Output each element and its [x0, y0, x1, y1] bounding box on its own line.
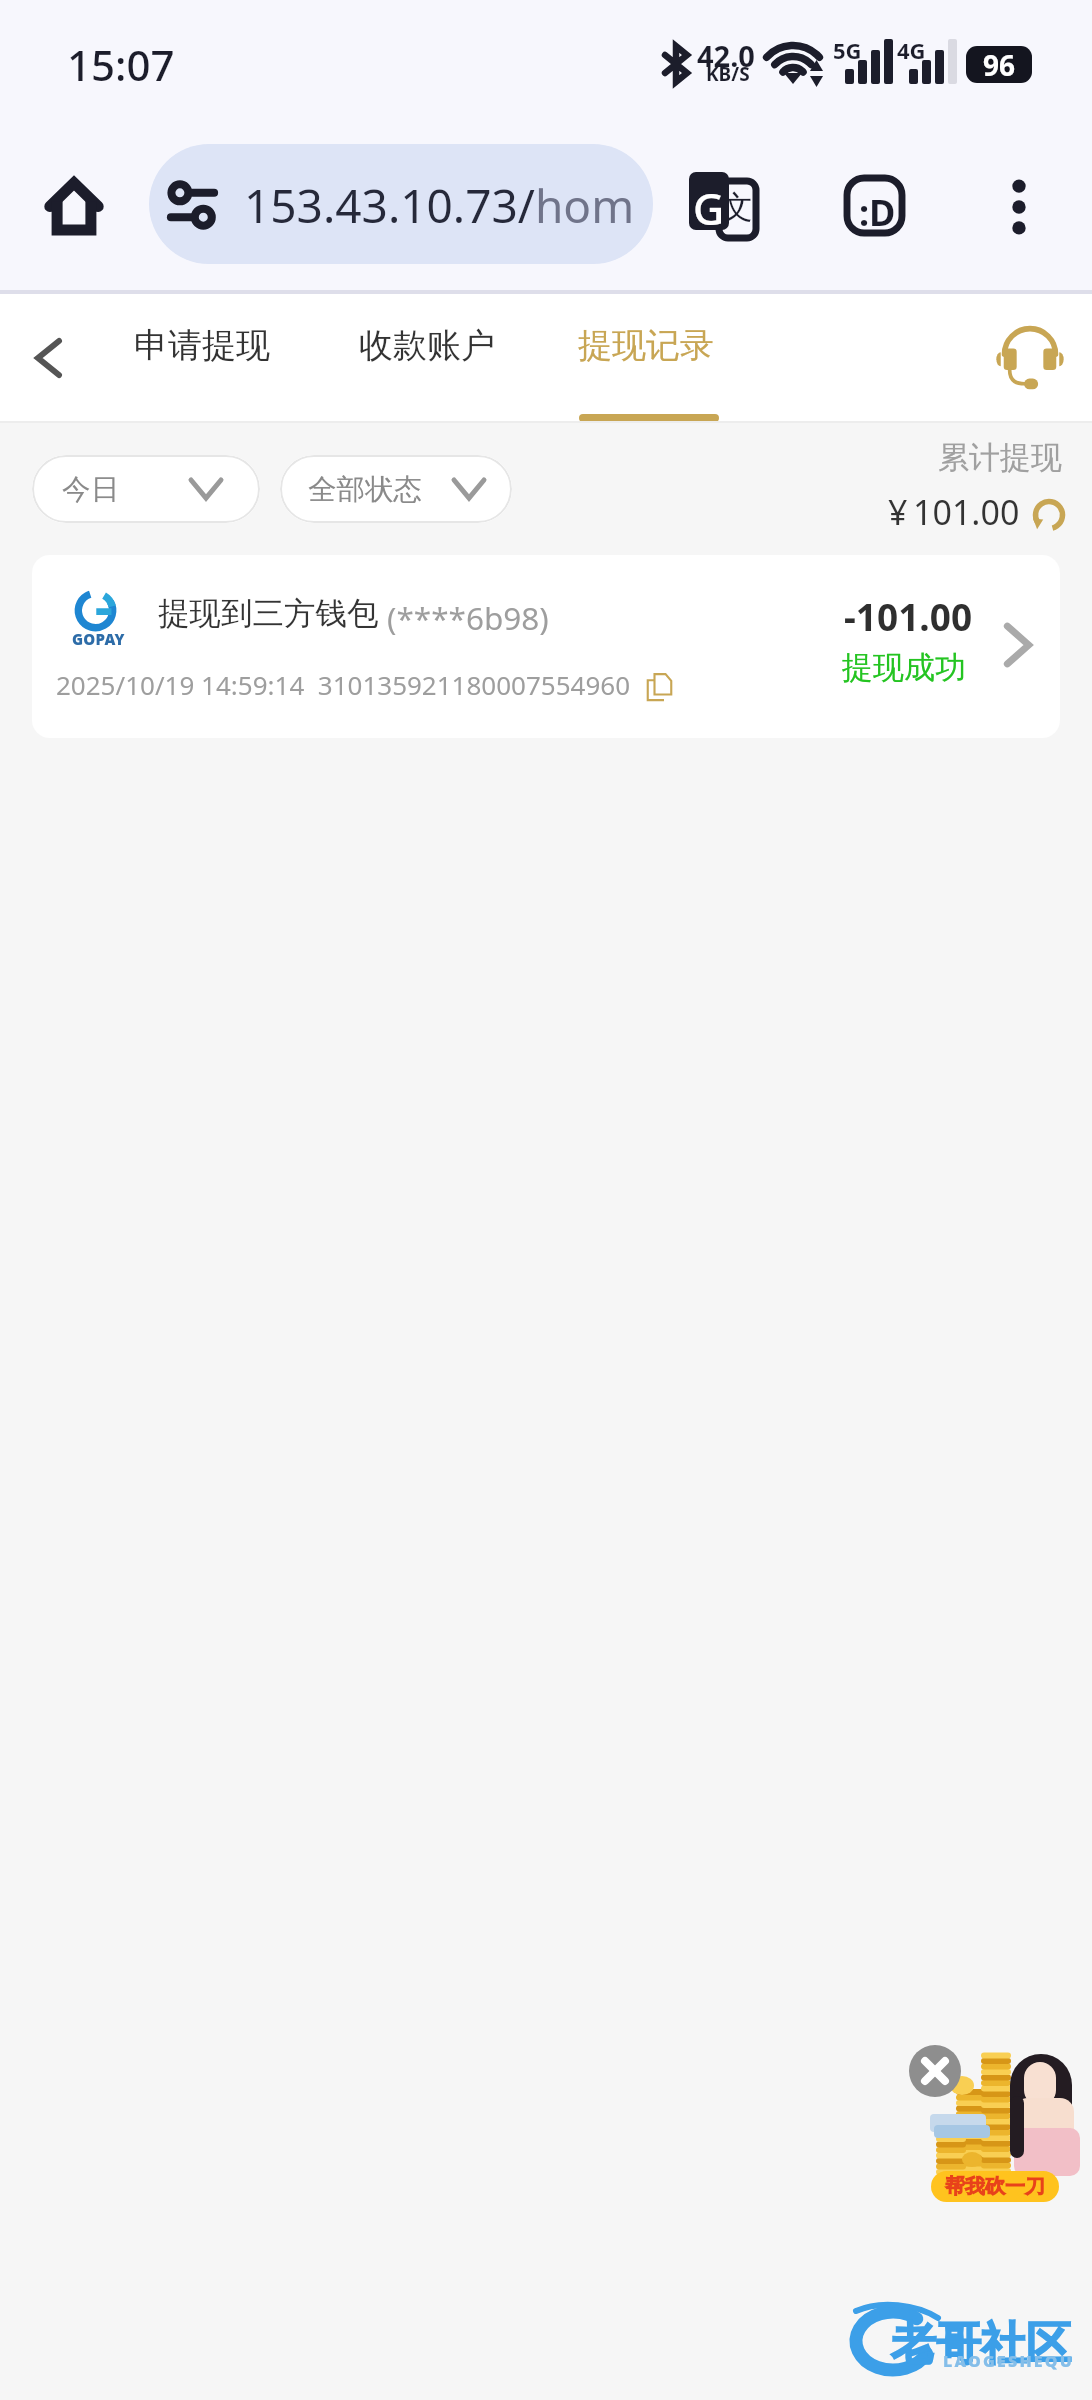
button[interactable]: 申请提现	[110, 300, 294, 400]
staticText: 老哥社区	[891, 2316, 1071, 2373]
staticText: 153.43.10.73/hom	[244, 174, 635, 237]
staticText: 提现成功	[842, 648, 966, 687]
button[interactable]: Refresh total	[1032, 498, 1066, 532]
button[interactable]: GOPAY	[32, 555, 1060, 738]
staticText: 5G	[833, 35, 862, 65]
staticText: LAOGESHEQU	[943, 2350, 1075, 2372]
staticText: 文	[721, 187, 753, 227]
button[interactable]: Switch tabs	[829, 155, 921, 247]
button[interactable]: 今日	[32, 455, 260, 523]
staticText: (****6b98)	[387, 596, 549, 639]
button[interactable]: Back	[4, 302, 88, 386]
button[interactable]: More options	[973, 161, 1065, 253]
staticText: KB/S	[706, 61, 750, 87]
button[interactable]: Copy order number	[647, 673, 672, 701]
staticText: 提现到三方钱包	[158, 594, 379, 634]
staticText: 帮我砍一刀	[945, 2174, 1045, 2199]
button[interactable]: Close ad	[909, 2045, 961, 2097]
staticText: 96	[983, 46, 1016, 83]
staticText: :D	[859, 188, 896, 237]
button[interactable]: 帮我砍一刀	[931, 2171, 1059, 2202]
staticText: ¥	[888, 489, 908, 535]
staticText: 4G	[897, 35, 926, 65]
staticText: 今日	[62, 472, 119, 508]
button[interactable]: Translate page	[680, 160, 768, 248]
staticText: 101.00	[913, 489, 1020, 535]
staticText: 收款账户	[359, 324, 495, 367]
button[interactable]: 收款账户	[335, 300, 519, 400]
button[interactable]: 全部状态	[280, 455, 512, 523]
staticText: 提现记录	[578, 324, 714, 367]
staticText: 2025/10/19 14:59:14 31013592118000755496…	[56, 667, 631, 702]
staticText: 全部状态	[308, 472, 422, 508]
staticText: G	[693, 179, 725, 238]
staticText: -101.00	[844, 591, 973, 641]
button[interactable]: 提现记录	[554, 300, 738, 400]
staticText: GOPAY	[72, 629, 125, 649]
button[interactable]: 153.43.10.73/hom	[149, 144, 653, 264]
button[interactable]: Customer service	[984, 310, 1076, 402]
staticText: 申请提现	[134, 324, 270, 367]
button[interactable]: Home	[28, 133, 118, 223]
staticText: 累计提现	[938, 438, 1062, 477]
staticText: 15:07	[67, 36, 175, 93]
staticText: 42.0	[697, 36, 755, 75]
